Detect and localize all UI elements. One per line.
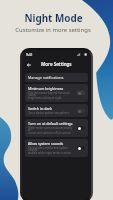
staticText: Keep alarms, media and system sounds aud… <box>28 146 75 155</box>
staticText: Night Mode <box>24 11 83 24</box>
button[interactable]: Switch to dark <box>77 109 85 113</box>
staticText: Manage notifications <box>28 75 64 80</box>
button[interactable]: Manage notifications <box>25 73 88 82</box>
button[interactable]: Switch to dark <box>25 104 88 117</box>
button[interactable]: Turn on at default settings <box>25 119 88 137</box>
staticText: Allow system sounds <box>28 141 64 146</box>
staticText: Night mode turns on automatically at sun… <box>28 126 75 135</box>
button[interactable]: Allow system sounds <box>25 139 88 157</box>
button[interactable]: Back <box>24 60 33 69</box>
staticText: Dim the screen beyond the usual lowest b… <box>28 91 75 100</box>
staticText: Customize in more settings <box>15 26 91 34</box>
staticText: Use a darker palette everywhere <box>28 111 69 115</box>
staticText: Minimum brightness <box>28 86 64 91</box>
staticText: Switch to dark <box>28 106 52 111</box>
staticText: Turn on at default settings <box>28 121 73 126</box>
staticText: 9:41 <box>26 52 33 57</box>
button[interactable]: Turn on at default settings <box>77 126 85 130</box>
button[interactable]: Minimum brightness <box>77 91 85 95</box>
button[interactable]: Minimum brightness <box>25 84 88 102</box>
button[interactable]: Allow system sounds <box>77 146 85 150</box>
staticText: More Settings <box>41 61 72 67</box>
